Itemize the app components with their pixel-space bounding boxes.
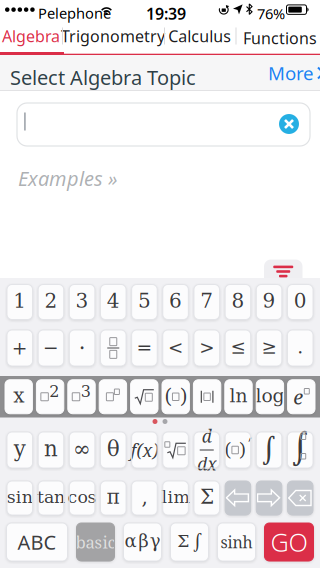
staticText: ≥ — [262, 339, 276, 357]
button[interactable]: ∫ — [287, 432, 313, 468]
button[interactable]: > — [194, 330, 220, 366]
button[interactable]: Algebra — [0, 20, 62, 52]
staticText: ∫ — [261, 437, 277, 463]
button[interactable]: ABC — [6, 523, 67, 561]
button[interactable]: ≥ — [256, 330, 282, 366]
staticText: 7 — [200, 292, 213, 312]
button[interactable]: lim — [163, 481, 188, 515]
button[interactable]: ( — [162, 380, 189, 414]
button[interactable]: , — [132, 481, 157, 515]
staticText: θ — [106, 439, 120, 461]
button[interactable]: 2 — [38, 284, 64, 319]
button[interactable]: 1 — [7, 284, 33, 319]
staticText: , — [141, 488, 147, 508]
button[interactable]: e — [288, 380, 315, 414]
button[interactable] — [131, 380, 158, 414]
button[interactable]: d — [194, 432, 220, 468]
staticText: ′ — [247, 438, 252, 454]
button[interactable]: + — [7, 330, 33, 366]
button[interactable]: Move left — [225, 481, 251, 515]
staticText: x — [13, 387, 24, 407]
staticText: · — [79, 337, 85, 359]
button[interactable]: Hide keyboard — [264, 259, 302, 285]
button[interactable]: Calculus — [164, 20, 235, 52]
button[interactable] — [163, 432, 188, 468]
staticText: y — [14, 439, 26, 461]
staticText: ABC — [17, 529, 56, 555]
button[interactable]: Equation input — [17, 103, 310, 146]
button[interactable]: More — [268, 55, 320, 91]
staticText: log — [255, 387, 284, 406]
staticText: GO — [270, 525, 307, 559]
button[interactable]: = — [132, 330, 157, 366]
staticText: αβγ — [124, 533, 161, 551]
button[interactable]: Σ ∫ — [170, 523, 208, 561]
staticText: 76% — [257, 4, 285, 23]
button[interactable]: Clear — [279, 114, 299, 134]
button[interactable]: 4 — [100, 284, 126, 319]
staticText: Σ ∫ — [176, 533, 202, 551]
button[interactable]: αβγ — [123, 523, 161, 561]
button[interactable]: . — [287, 330, 313, 366]
staticText: ∞ — [74, 439, 91, 461]
button[interactable]: 7 — [194, 284, 220, 319]
button[interactable]: n — [38, 432, 64, 468]
button[interactable]: Σ — [194, 481, 220, 515]
button[interactable]: 3 — [68, 380, 95, 414]
button[interactable] — [100, 330, 126, 366]
button[interactable]: 6 — [163, 284, 188, 319]
button[interactable]: ln — [225, 380, 252, 414]
button[interactable]: x — [5, 380, 32, 414]
button[interactable]: < — [163, 330, 188, 366]
staticText: Examples » — [18, 165, 118, 192]
button[interactable]: 8 — [225, 284, 251, 319]
button[interactable]: π — [100, 481, 126, 515]
button[interactable]: tan — [38, 481, 64, 515]
button[interactable]: Trigonometry — [62, 20, 164, 52]
button[interactable]: f(x) — [132, 432, 157, 468]
button[interactable]: Move right — [256, 481, 282, 515]
staticText: Calculus — [168, 25, 231, 47]
button[interactable]: Functions & Gra — [235, 20, 320, 52]
staticText: 0 — [294, 292, 307, 312]
staticText: π — [106, 488, 121, 508]
button[interactable]: sin — [7, 481, 33, 515]
button[interactable]: ≤ — [225, 330, 251, 366]
staticText: 2 — [49, 384, 59, 400]
button[interactable]: GO — [264, 523, 313, 561]
staticText: . — [297, 339, 303, 357]
button[interactable]: 0 — [287, 284, 313, 319]
staticText: basic — [75, 531, 115, 553]
button[interactable]: cos — [69, 481, 95, 515]
button[interactable]: 9 — [256, 284, 282, 319]
button[interactable]: Delete — [287, 481, 313, 515]
staticText: ( — [223, 441, 231, 459]
button[interactable] — [99, 380, 127, 414]
staticText: More — [268, 61, 314, 85]
staticText: 9 — [263, 292, 276, 312]
staticText: > — [200, 339, 214, 357]
staticText: ≤ — [231, 339, 245, 357]
button[interactable] — [193, 380, 221, 414]
button[interactable]: log — [256, 380, 284, 414]
staticText: ln — [229, 387, 247, 406]
button[interactable]: y — [7, 432, 33, 468]
button[interactable]: 3 — [69, 284, 95, 319]
staticText: 4 — [107, 292, 120, 312]
button[interactable]: − — [38, 330, 64, 366]
staticText: dx — [197, 452, 216, 476]
staticText: d — [202, 424, 212, 448]
button[interactable]: ∫ — [256, 432, 282, 468]
button[interactable]: ( — [225, 432, 251, 468]
button[interactable]: 5 — [132, 284, 157, 319]
button[interactable]: 2 — [36, 380, 64, 414]
button[interactable]: Examples » — [18, 165, 118, 192]
button[interactable]: ∞ — [69, 432, 95, 468]
button[interactable]: basic — [76, 523, 114, 561]
staticText: Algebra — [2, 25, 60, 47]
button[interactable]: θ — [100, 432, 126, 468]
button[interactable]: sinh — [217, 523, 255, 561]
button[interactable]: · — [69, 330, 95, 366]
staticText: sinh — [220, 531, 252, 553]
staticText: + — [12, 339, 27, 357]
